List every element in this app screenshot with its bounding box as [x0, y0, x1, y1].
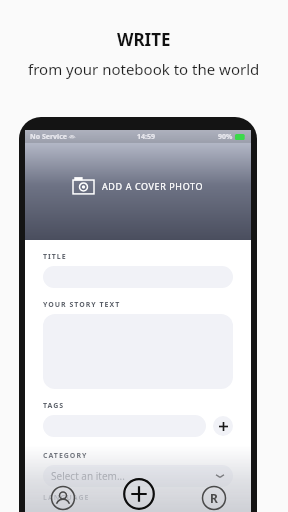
button[interactable]: Add tag — [213, 416, 233, 436]
button[interactable]: Profile — [50, 485, 76, 511]
staticText: TAGS — [43, 401, 65, 411]
staticText: No Service — [30, 132, 67, 142]
staticText: CATEGORY — [43, 451, 88, 461]
staticText: 14:59 — [137, 132, 155, 142]
staticText: R — [210, 490, 218, 506]
button[interactable]: Select an item... — [43, 465, 233, 487]
staticText: YOUR STORY TEXT — [43, 300, 121, 310]
button[interactable]: ADD A COVER PHOTO — [73, 175, 204, 196]
button[interactable]: Create — [122, 477, 156, 511]
staticText: 90% — [218, 132, 233, 142]
staticText: from your notebook to the world — [28, 59, 260, 79]
button[interactable]: Read — [201, 485, 227, 511]
staticText: TITLE — [43, 252, 67, 262]
staticText: WRITE — [117, 28, 171, 51]
staticText: LANGUAGE — [43, 493, 90, 503]
staticText: ADD A COVER PHOTO — [102, 180, 204, 192]
staticText: Select an item... — [51, 469, 125, 483]
